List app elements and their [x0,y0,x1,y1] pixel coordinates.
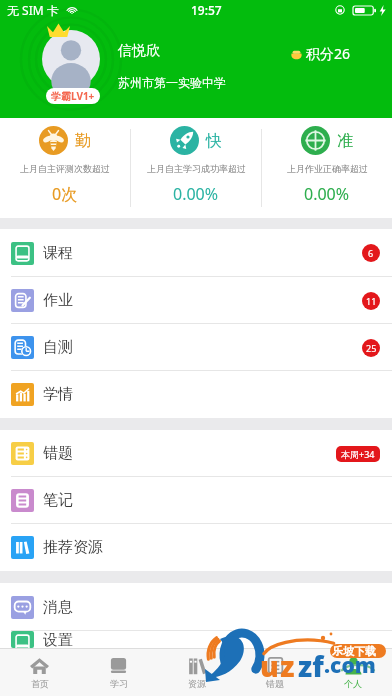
staticText: 首页 [31,678,49,689]
staticText: 0.00% [173,183,219,205]
staticText: 作业 [43,291,73,310]
button[interactable]: 学习 [79,649,158,696]
staticText: 个人 [344,678,362,689]
button[interactable]: 笔记 [0,477,392,524]
button[interactable]: 作业 [0,277,392,324]
staticText: 乐坡下载 [332,644,376,658]
staticText: 学习 [110,678,128,689]
button[interactable]: 消息 [0,583,392,631]
staticText: zf [298,647,324,685]
button[interactable]: 推荐资源 [0,524,392,571]
button[interactable]: 学情 [0,371,392,418]
button[interactable]: 自测 [0,324,392,371]
staticText: uz [260,647,296,685]
staticText: 积分26 [306,44,351,63]
staticText: 准 [337,131,353,151]
staticText: 0.00% [304,183,350,205]
staticText: 资源 [188,678,206,689]
staticText: 课程 [43,244,73,263]
staticText: .com [324,651,376,680]
staticText: 本周+34 [341,448,375,460]
staticText: 6 [368,247,374,259]
button[interactable]: 首页 [0,649,79,696]
staticText: 上月自主学习成功率超过 [147,163,246,174]
button[interactable]: 设置 [0,631,392,648]
staticText: 学情 [43,385,73,404]
staticText: 勤 [75,131,91,151]
staticText: 信悦欣 [118,42,160,60]
button[interactable]: 资源 [158,649,236,696]
button[interactable]: 错题 [236,649,314,696]
button[interactable]: 个人 [314,649,392,696]
staticText: 笔记 [43,491,73,510]
staticText: 无 SIM 卡 [7,2,59,18]
staticText: 设置 [43,631,73,648]
staticText: 11 [366,295,377,307]
staticText: 自测 [43,338,73,357]
staticText: 快 [206,131,222,151]
staticText: 19:57 [191,2,222,18]
staticText: 错题 [43,444,73,463]
staticText: 上月作业正确率超过 [287,163,368,174]
staticText: 0次 [52,183,78,205]
staticText: 消息 [43,598,73,617]
staticText: 推荐资源 [43,538,103,557]
staticText: 学霸LV1+ [51,89,95,103]
staticText: 上月自主评测次数超过 [20,163,110,174]
button[interactable]: 错题 [0,430,392,477]
button[interactable]: 课程 [0,229,392,277]
staticText: 苏州市第一实验中学 [118,75,226,90]
staticText: 25 [366,342,377,354]
staticText: 错题 [266,678,284,689]
